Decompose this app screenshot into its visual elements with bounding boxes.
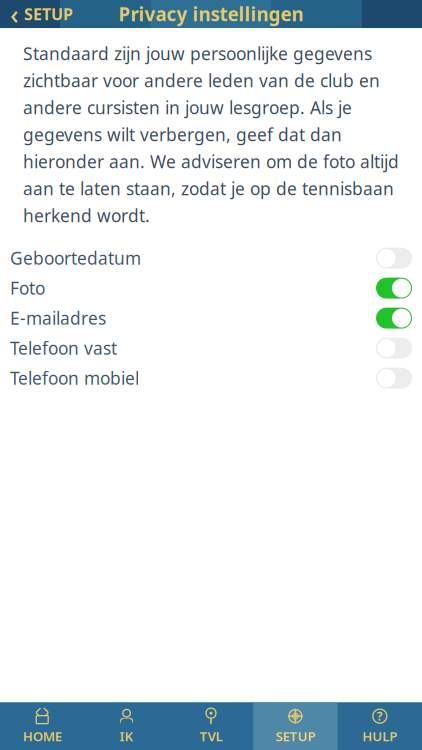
- staticText: TVL: [199, 727, 222, 745]
- button[interactable]: Geboortedatum: [0, 243, 422, 273]
- button[interactable]: Aan: [376, 278, 412, 299]
- staticText: ?: [377, 708, 383, 724]
- staticText: HOME: [23, 727, 62, 745]
- button[interactable]: Uit: [376, 338, 412, 359]
- staticText: Privacy instellingen: [118, 2, 303, 26]
- staticText: SETUP: [24, 3, 73, 25]
- staticText: IK: [120, 727, 134, 745]
- button[interactable]: IK: [84, 703, 169, 750]
- button[interactable]: Telefoon vast: [0, 333, 422, 363]
- button[interactable]: SETUP: [253, 703, 338, 750]
- button[interactable]: TVL: [169, 703, 253, 750]
- button[interactable]: HOME: [0, 703, 84, 750]
- button[interactable]: Aan: [376, 308, 412, 329]
- button[interactable]: ‹: [0, 0, 83, 28]
- staticText: Standaard zijn jouw persoonlijke gegeven…: [23, 42, 399, 227]
- button[interactable]: E-mailadres: [0, 303, 422, 333]
- button[interactable]: Telefoon mobiel: [0, 363, 422, 393]
- staticText: ‹: [10, 0, 19, 32]
- staticText: E-mailadres: [10, 307, 106, 330]
- button[interactable]: Uit: [376, 368, 412, 389]
- staticText: SETUP: [275, 727, 315, 745]
- staticText: Telefoon vast: [10, 337, 117, 360]
- button[interactable]: Foto: [0, 273, 422, 303]
- staticText: HULP: [362, 727, 397, 745]
- staticText: Foto: [10, 277, 45, 300]
- button[interactable]: Uit: [376, 248, 412, 269]
- staticText: Telefoon mobiel: [10, 367, 139, 390]
- button[interactable]: ?: [338, 703, 422, 750]
- staticText: Geboortedatum: [10, 247, 141, 270]
